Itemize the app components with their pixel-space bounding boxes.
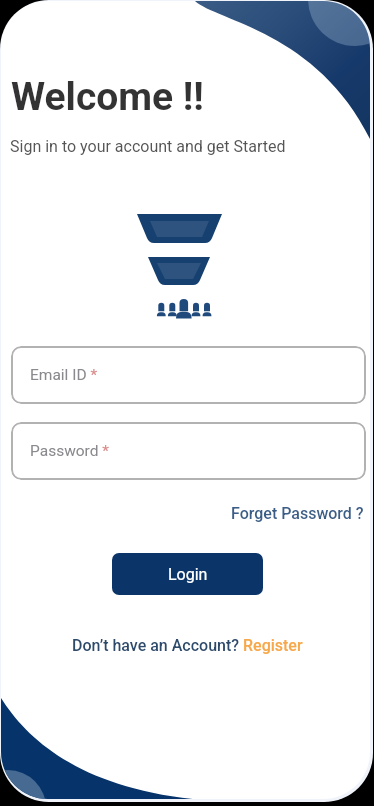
button[interactable]: Forget Password ? <box>231 504 364 523</box>
staticText: Email ID * <box>30 366 98 384</box>
staticText: Sign in to your account and get Started <box>10 137 286 156</box>
button[interactable]: Password * <box>11 422 366 480</box>
button[interactable]: Login <box>112 553 263 595</box>
staticText: Welcome !! <box>11 74 204 120</box>
staticText: Password * <box>30 442 109 460</box>
button[interactable]: Don’t have an Account? Register <box>72 636 303 655</box>
button[interactable]: Email ID * <box>11 346 366 404</box>
staticText: Login <box>168 565 208 584</box>
